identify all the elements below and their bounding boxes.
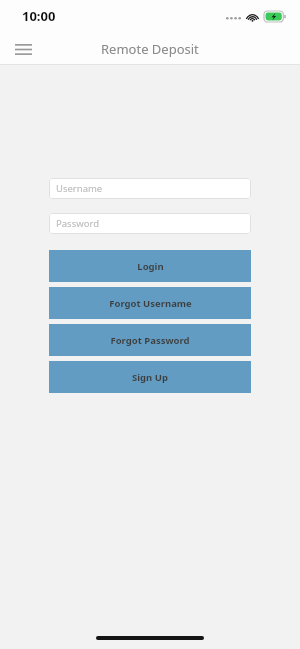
button[interactable]: Password	[49, 213, 251, 234]
staticText: Password	[56, 217, 99, 230]
staticText: Login	[137, 260, 164, 273]
button[interactable]: Forgot Password	[49, 324, 251, 356]
staticText: Username	[56, 182, 103, 195]
button[interactable]: Login	[49, 250, 251, 282]
button[interactable]: Forgot Username	[49, 287, 251, 319]
staticText: 10:00	[22, 7, 56, 25]
button[interactable]: Open navigation menu	[8, 34, 38, 64]
button[interactable]: Sign Up	[49, 361, 251, 393]
button[interactable]: Username	[49, 178, 251, 199]
staticText: Forgot Password	[110, 334, 190, 347]
staticText: Remote Deposit	[101, 40, 199, 58]
staticText: Sign Up	[132, 371, 168, 384]
staticText: Forgot Username	[109, 297, 192, 310]
